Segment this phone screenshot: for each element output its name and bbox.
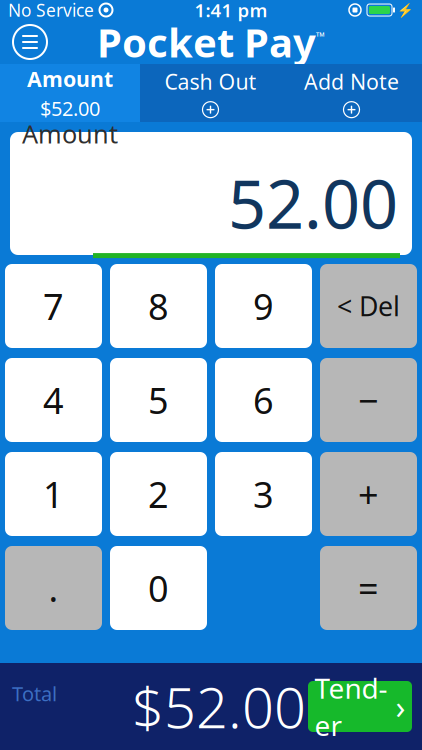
staticText: 5 [148,376,169,424]
button[interactable]: Tender [308,681,412,732]
staticText: 3 [253,470,274,518]
staticText: 2 [148,470,169,518]
staticText: 9 [253,282,274,330]
staticText: Amount [22,117,118,150]
staticText: No Service [8,0,94,21]
staticText: Cash Out [164,67,256,96]
staticText: − [358,376,379,424]
staticText: Tender [314,669,387,744]
button[interactable]: Cash Out [140,64,281,122]
button[interactable]: 0 [110,546,207,630]
staticText: Add Note [304,67,399,96]
staticText: › [395,685,405,728]
button[interactable]: Amount [0,64,140,122]
staticText: Amount [27,65,113,93]
staticText: Pocket Pay [97,15,316,68]
button[interactable]: Add Note [281,64,422,122]
button[interactable]: 8 [110,264,207,348]
button[interactable]: 3 [215,452,312,536]
staticText: ™ [316,28,325,44]
button[interactable]: < Del [320,264,417,348]
button[interactable]: 1 [5,452,102,536]
staticText: $52.00 [40,95,100,121]
button[interactable]: 5 [110,358,207,442]
button[interactable]: 9 [215,264,312,348]
staticText: 1:41 pm [194,0,267,22]
button[interactable]: − [320,358,417,442]
staticText: 7 [43,282,64,330]
staticText: 1 [43,470,64,518]
staticText: < Del [337,288,400,324]
staticText: 4 [43,376,64,424]
button[interactable]: 7 [5,264,102,348]
button[interactable]: = [320,546,417,630]
button[interactable]: 2 [110,452,207,536]
button[interactable]: 4 [5,358,102,442]
staticText: 0 [148,564,169,612]
button[interactable]: . [5,546,102,630]
staticText: 6 [253,376,274,424]
staticText: $52.00 [132,669,306,744]
staticText: 8 [148,282,169,330]
staticText: . [48,564,58,612]
staticText: Total [12,680,57,707]
button[interactable]: 6 [215,358,312,442]
button[interactable]: + [320,452,417,536]
staticText: ⚡ [397,2,414,18]
staticText: = [358,564,379,612]
button[interactable]: Menu [8,20,52,64]
staticText: + [358,470,379,518]
staticText: 52.00 [228,159,398,247]
